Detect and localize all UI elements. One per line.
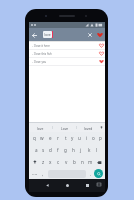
button[interactable]: ,	[39, 168, 47, 179]
button[interactable]	[94, 169, 103, 178]
staticText: l	[96, 147, 98, 153]
button[interactable]: love	[29, 123, 52, 132]
staticText: j	[80, 147, 82, 153]
staticText: x	[49, 159, 52, 165]
button[interactable]: n	[78, 156, 86, 168]
staticText: ?123	[32, 172, 38, 175]
staticText: e	[49, 135, 52, 141]
staticText: s	[42, 147, 45, 153]
staticText: h	[72, 147, 75, 153]
button[interactable]: t	[62, 132, 69, 144]
button[interactable]: d	[47, 144, 54, 156]
staticText: c	[57, 159, 60, 165]
button[interactable]: h	[69, 144, 77, 156]
staticText: b	[73, 159, 76, 165]
button[interactable]: r	[54, 132, 62, 144]
button[interactable]: x	[47, 156, 54, 168]
staticText: loved	[84, 126, 93, 130]
button[interactable]: Love	[53, 123, 76, 132]
staticText: z	[42, 159, 45, 165]
button[interactable]: z	[40, 156, 47, 168]
staticText: k	[88, 147, 91, 153]
staticText: r	[57, 135, 59, 141]
button[interactable]: j	[77, 144, 85, 156]
button[interactable]: loved	[77, 123, 100, 132]
staticText: p	[99, 135, 102, 141]
button[interactable]	[30, 31, 38, 39]
button[interactable]: y	[69, 132, 76, 144]
button[interactable]: p	[97, 132, 104, 144]
button[interactable]: k	[85, 144, 93, 156]
button[interactable]: e	[46, 132, 54, 144]
staticText: i	[86, 135, 88, 141]
button[interactable]	[94, 156, 104, 168]
button[interactable]	[30, 156, 40, 168]
button[interactable]: s	[40, 144, 47, 156]
button[interactable]	[95, 181, 102, 188]
staticText: a	[35, 147, 38, 153]
staticText: - I love you	[32, 60, 47, 64]
staticText: n	[81, 159, 84, 165]
button[interactable]: g	[61, 144, 69, 156]
staticText: - I love it here	[32, 44, 50, 48]
staticText: d	[49, 147, 52, 153]
button[interactable]: f	[54, 144, 61, 156]
staticText: v	[65, 159, 68, 165]
staticText: t	[65, 135, 67, 141]
button[interactable]: a	[33, 144, 40, 156]
button[interactable]: - I love you	[29, 58, 105, 66]
button[interactable]: c	[54, 156, 62, 168]
staticText: y	[71, 135, 74, 141]
button[interactable]	[86, 31, 93, 38]
staticText: love	[44, 32, 51, 37]
button[interactable]: - I love this fish	[29, 50, 105, 58]
staticText: f	[57, 147, 59, 153]
button[interactable]: b	[70, 156, 78, 168]
staticText: ,	[42, 171, 44, 177]
staticText: .	[90, 171, 92, 177]
staticText: w	[40, 135, 44, 141]
staticText: Love	[61, 126, 69, 130]
button[interactable]: i	[83, 132, 90, 144]
button[interactable]	[96, 31, 103, 38]
button[interactable]: w	[38, 132, 46, 144]
button[interactable]: l	[93, 144, 101, 156]
staticText: love	[37, 126, 44, 130]
staticText: o	[92, 135, 95, 141]
staticText: q	[33, 135, 36, 141]
button[interactable]: v	[62, 156, 70, 168]
button[interactable]: o	[90, 132, 97, 144]
staticText: g	[64, 147, 67, 153]
button[interactable]: q	[30, 132, 38, 144]
staticText: m	[88, 159, 93, 165]
button[interactable]: - I love it here	[29, 42, 105, 50]
button[interactable]	[43, 181, 51, 189]
button[interactable]	[63, 181, 71, 189]
staticText: u	[78, 135, 81, 141]
button[interactable]: u	[76, 132, 83, 144]
button[interactable]: ?123	[30, 168, 39, 179]
button[interactable]: m	[86, 156, 94, 168]
button[interactable]	[83, 181, 91, 189]
button[interactable]: .	[87, 168, 94, 179]
staticText: - I love this fish	[32, 52, 52, 56]
